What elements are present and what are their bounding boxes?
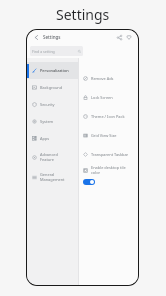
button[interactable]: Favorite	[124, 32, 134, 42]
staticText: Personalization	[40, 68, 78, 73]
other: Enable desktop tile color toggle	[83, 179, 95, 185]
button[interactable]: Enable desktop tile color	[79, 164, 138, 185]
button[interactable]: Personalization	[27, 62, 78, 79]
staticText: Transparent Taskbar	[91, 152, 129, 157]
staticText: Background	[40, 85, 78, 90]
staticText: Grid View Size	[91, 133, 117, 138]
button[interactable]: Theme / Icon Pack	[79, 107, 138, 126]
button[interactable]: Transparent Taskbar	[79, 145, 138, 164]
staticText: System	[40, 119, 78, 124]
button[interactable]: Remove Ads	[79, 69, 138, 88]
staticText: General Management	[40, 172, 78, 182]
button[interactable]: Apps	[27, 130, 78, 147]
staticText: Find a setting	[32, 49, 55, 54]
staticText: Security	[40, 102, 78, 107]
button[interactable]: Background	[27, 79, 78, 96]
button[interactable]: Share	[114, 32, 124, 42]
staticText: Advanced Feature	[40, 152, 78, 162]
button[interactable]: System	[27, 113, 78, 130]
button[interactable]: General Management	[27, 167, 78, 187]
button[interactable]: Back	[31, 32, 41, 42]
staticText: Lock Screen	[91, 95, 113, 100]
staticText: Theme / Icon Pack	[91, 114, 125, 119]
button[interactable]: Lock Screen	[79, 88, 138, 107]
button[interactable]: Security	[27, 96, 78, 113]
staticText: Remove Ads	[91, 76, 114, 81]
staticText: Apps	[40, 136, 78, 141]
button[interactable]: Find a setting	[30, 46, 83, 56]
staticText: Settings	[43, 34, 61, 40]
button[interactable]: Advanced Feature	[27, 147, 78, 167]
staticText: Settings	[56, 5, 110, 24]
button[interactable]: Grid View Size	[79, 126, 138, 145]
staticText: Enable desktop tile color	[91, 165, 135, 175]
